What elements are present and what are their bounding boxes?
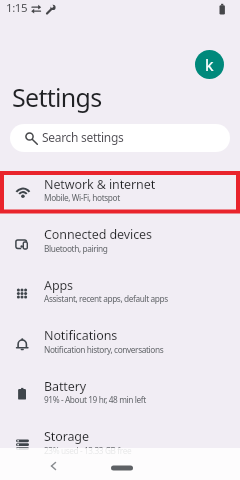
staticText: k	[205, 54, 214, 76]
staticText: 91% - About 19 hr, 48 min left	[44, 394, 146, 405]
staticText: Battery	[44, 378, 87, 395]
staticText: Notification history, conversations	[44, 344, 164, 355]
staticText: Settings	[12, 80, 102, 114]
staticText: Storage	[44, 428, 89, 445]
staticText: Search settings	[42, 129, 124, 145]
staticText: 23% used - 13.33 GB free	[44, 445, 132, 456]
staticText: Mobile, Wi-Fi, hotspot	[44, 192, 120, 203]
staticText: Bluetooth, pairing	[44, 243, 108, 254]
staticText: Apps	[44, 277, 73, 294]
staticText: Assistant, recent apps, default apps	[44, 293, 168, 304]
staticText: Connected devices	[44, 226, 152, 243]
staticText: Network & internet	[44, 176, 156, 193]
staticText: Notifications	[44, 327, 118, 344]
staticText: 1:15	[6, 0, 28, 16]
